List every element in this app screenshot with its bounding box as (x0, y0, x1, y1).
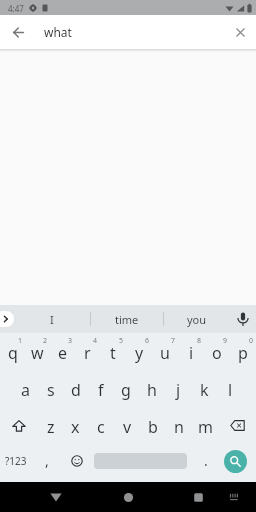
staticText: j (176, 379, 181, 401)
button[interactable]: x (63, 407, 88, 444)
button[interactable]: t (100, 333, 126, 370)
button[interactable] (0, 311, 14, 327)
button[interactable] (224, 450, 247, 473)
staticText: u (160, 342, 170, 364)
staticText: 5 (119, 336, 124, 346)
button[interactable]: a (13, 370, 38, 407)
staticText: p (238, 342, 248, 364)
staticText: n (174, 416, 184, 438)
button[interactable]: s (38, 370, 63, 407)
button[interactable] (224, 482, 244, 512)
staticText: 9 (223, 336, 228, 346)
button[interactable]: u (152, 333, 178, 370)
button[interactable] (66, 444, 88, 482)
button[interactable] (8, 22, 28, 42)
button[interactable]: h (139, 370, 165, 407)
staticText: 7 (171, 336, 176, 346)
staticText: 4 (93, 336, 98, 346)
staticText: v (123, 416, 132, 438)
staticText: q (8, 342, 18, 364)
button[interactable]: v (114, 407, 140, 444)
staticText: 8 (197, 336, 202, 346)
staticText: 0 (249, 336, 254, 346)
button[interactable] (235, 311, 251, 327)
staticText: x (71, 416, 80, 438)
staticText: e (58, 342, 68, 364)
button[interactable]: g (113, 370, 139, 407)
staticText: I (50, 312, 54, 327)
button[interactable]: , (36, 444, 58, 482)
button[interactable]: ?123 (0, 444, 32, 482)
staticText: i (189, 342, 194, 364)
button[interactable]: f (88, 370, 113, 407)
staticText: a (21, 379, 30, 401)
staticText: 3 (68, 336, 73, 346)
staticText: 4:47 (8, 3, 24, 14)
button[interactable]: I (14, 305, 90, 333)
staticText: g (121, 379, 131, 401)
staticText: what (44, 24, 72, 40)
staticText: 1 (18, 336, 23, 346)
staticText: m (198, 416, 213, 438)
button[interactable]: w (25, 333, 50, 370)
staticText: time (115, 312, 139, 327)
button[interactable]: p (230, 333, 256, 370)
staticText: 2 (43, 336, 48, 346)
button[interactable]: o (204, 333, 230, 370)
button[interactable]: n (166, 407, 192, 444)
button[interactable]: i (178, 333, 204, 370)
button[interactable]: you (163, 305, 231, 333)
staticText: s (47, 379, 55, 401)
button[interactable]: j (165, 370, 191, 407)
button[interactable] (231, 23, 249, 41)
staticText: z (47, 416, 55, 438)
staticText: 6 (145, 336, 150, 346)
staticText: t (110, 342, 116, 364)
button[interactable] (44, 482, 68, 512)
staticText: h (147, 379, 157, 401)
button[interactable]: b (140, 407, 166, 444)
button[interactable]: z (38, 407, 63, 444)
staticText: f (98, 379, 104, 401)
button[interactable] (186, 482, 210, 512)
staticText: you (187, 312, 207, 327)
button[interactable]: . (196, 444, 216, 482)
staticText: k (200, 379, 209, 401)
button[interactable] (218, 407, 256, 444)
button[interactable] (0, 407, 38, 444)
button[interactable]: d (63, 370, 88, 407)
staticText: d (71, 379, 81, 401)
staticText: o (212, 342, 222, 364)
staticText: l (228, 379, 233, 401)
button[interactable]: r (75, 333, 100, 370)
button[interactable]: y (126, 333, 152, 370)
button[interactable]: e (50, 333, 75, 370)
button[interactable]: m (192, 407, 218, 444)
button[interactable]: k (191, 370, 217, 407)
staticText: b (148, 416, 158, 438)
staticText: c (97, 416, 105, 438)
button[interactable]: c (88, 407, 114, 444)
staticText: ?123 (5, 454, 27, 468)
button[interactable]: time (90, 305, 163, 333)
button[interactable] (116, 482, 140, 512)
button[interactable]: q (0, 333, 25, 370)
staticText: y (135, 342, 144, 364)
staticText: , (45, 451, 49, 470)
staticText: . (204, 451, 208, 470)
staticText: r (84, 342, 91, 364)
button[interactable]: l (217, 370, 243, 407)
staticText: w (31, 342, 44, 364)
